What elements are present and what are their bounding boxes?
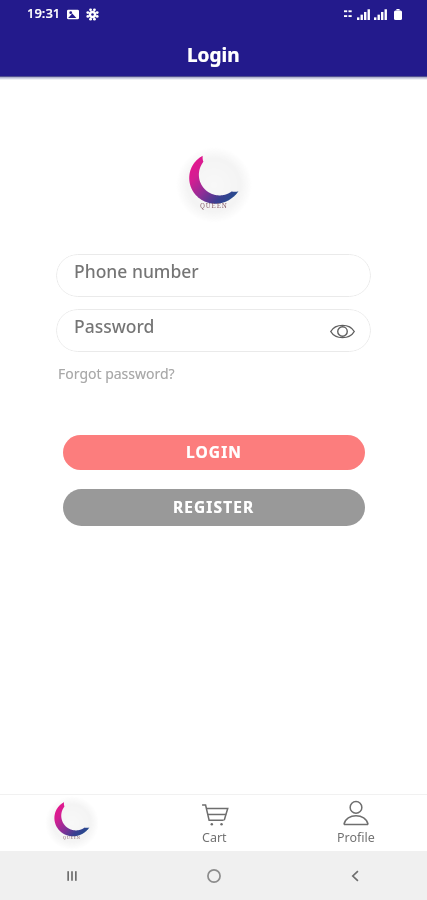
button[interactable]: Back xyxy=(285,851,427,900)
button[interactable]: Home xyxy=(143,851,285,900)
staticText: Cart xyxy=(202,829,227,846)
staticText: QUEEN xyxy=(63,834,81,840)
button[interactable]: LOGIN xyxy=(63,435,365,470)
staticText: LOGIN xyxy=(186,441,242,462)
staticText: QUEEN xyxy=(200,201,228,210)
staticText: REGISTER xyxy=(173,496,255,517)
staticText: Login xyxy=(187,42,240,68)
staticText: Password xyxy=(74,314,155,338)
button[interactable]: Profile xyxy=(285,794,427,851)
button[interactable]: Password xyxy=(56,309,371,352)
button[interactable]: Home xyxy=(0,794,143,851)
button[interactable]: Forgot password? xyxy=(58,364,175,383)
button[interactable]: Cart xyxy=(143,794,285,851)
button[interactable]: REGISTER xyxy=(63,489,365,526)
button[interactable]: Phone number xyxy=(56,254,371,297)
staticText: Profile xyxy=(337,829,375,846)
button[interactable]: Recents xyxy=(0,851,143,900)
staticText: 19:31 xyxy=(27,4,61,22)
staticText: Phone number xyxy=(74,259,199,283)
button[interactable]: Toggle password visibility xyxy=(324,313,360,349)
